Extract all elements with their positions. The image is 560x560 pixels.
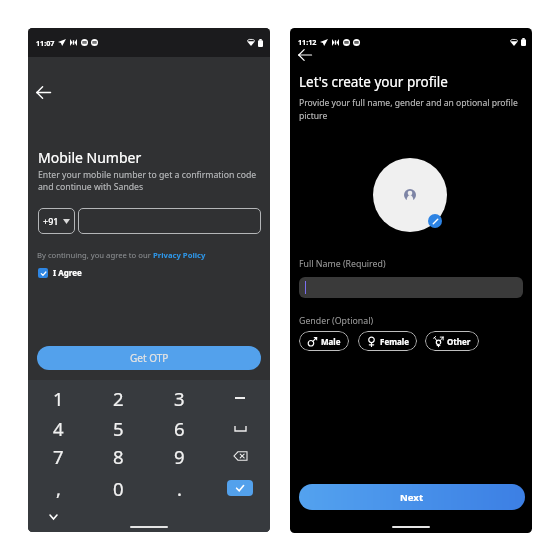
staticText: 7 xyxy=(53,444,64,469)
staticText: By continuing, you agree to our xyxy=(37,250,153,260)
button[interactable]: 8 xyxy=(98,442,138,470)
staticText: 8 xyxy=(113,444,124,469)
button[interactable]: Other xyxy=(425,331,479,351)
staticText: Full Name (Required) xyxy=(299,258,386,270)
button[interactable]: 6 xyxy=(159,414,199,442)
button[interactable]: +91 xyxy=(38,208,75,234)
staticText: 4 xyxy=(53,416,64,441)
staticText: , xyxy=(56,476,61,501)
staticText: 2 xyxy=(113,386,124,411)
button[interactable]: 5 xyxy=(98,414,138,442)
button[interactable]: 4 xyxy=(38,414,78,442)
button[interactable] xyxy=(299,277,523,298)
staticText: 0 xyxy=(113,476,124,501)
button[interactable]: Back xyxy=(293,43,317,67)
staticText: Let's create your profile xyxy=(299,73,448,91)
staticText: 6 xyxy=(174,416,185,441)
staticText: I Agree xyxy=(53,267,82,278)
button[interactable]: dash xyxy=(220,385,260,411)
button[interactable]: 7 xyxy=(38,442,78,470)
staticText: Other xyxy=(447,336,471,347)
staticText: Gender (Optional) xyxy=(299,315,374,327)
staticText: 3 xyxy=(174,386,185,411)
staticText: . xyxy=(177,476,182,501)
button[interactable]: Edit profile picture xyxy=(428,214,442,228)
button[interactable]: . xyxy=(159,474,199,502)
button[interactable]: Male xyxy=(299,331,349,351)
button[interactable]: 3 xyxy=(159,384,199,412)
button[interactable]: Hide keyboard xyxy=(43,506,64,527)
button[interactable]: Back xyxy=(30,79,56,105)
button[interactable]: Next xyxy=(299,484,525,510)
staticText: 5 xyxy=(113,416,124,441)
staticText: +91 xyxy=(43,215,59,227)
button[interactable]: 0 xyxy=(98,474,138,502)
button[interactable]: I Agree xyxy=(38,267,82,278)
staticText: Enter your mobile number to get a confir… xyxy=(38,169,257,192)
button[interactable]: 9 xyxy=(159,442,199,470)
staticText: Get OTP xyxy=(130,351,169,365)
staticText: 1 xyxy=(53,386,64,411)
staticText: 9 xyxy=(174,444,185,469)
button[interactable]: Privacy Policy xyxy=(153,250,206,260)
button[interactable] xyxy=(78,208,261,234)
staticText: 11:12 xyxy=(298,37,317,47)
button[interactable]: space xyxy=(220,415,260,441)
staticText: Next xyxy=(400,491,424,504)
button[interactable]: 1 xyxy=(38,384,78,412)
staticText: Provide your full name, gender and an op… xyxy=(299,97,518,122)
staticText: Mobile Number xyxy=(38,148,142,167)
button[interactable]: Female xyxy=(358,331,417,351)
button[interactable]: Get OTP xyxy=(37,346,261,370)
button[interactable]: 2 xyxy=(98,384,138,412)
staticText: Female xyxy=(380,336,409,347)
button[interactable]: , xyxy=(38,474,78,502)
staticText: Male xyxy=(321,336,341,347)
staticText: 11:07 xyxy=(36,38,55,48)
button[interactable]: del xyxy=(220,443,260,469)
button[interactable]: ok xyxy=(220,475,260,501)
